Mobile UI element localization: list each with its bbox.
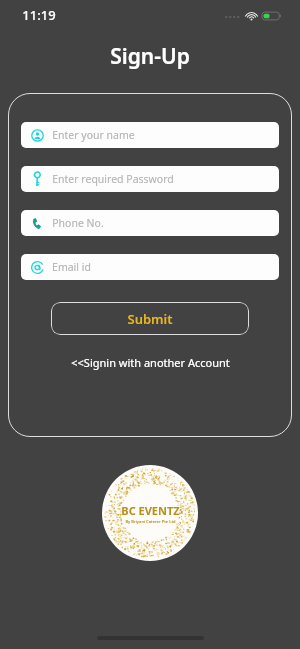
button[interactable]: Submit bbox=[51, 302, 249, 335]
staticText: Submit bbox=[127, 310, 173, 328]
button[interactable]: Email id bbox=[21, 254, 279, 280]
staticText: Enter your name bbox=[52, 128, 135, 142]
button[interactable]: <<Signin with another Account bbox=[21, 355, 279, 370]
button[interactable]: Enter your name bbox=[21, 122, 279, 148]
staticText: Sign-Up bbox=[110, 42, 190, 71]
staticText: Email id bbox=[52, 260, 91, 274]
button[interactable]: BC Eventz logo bbox=[102, 465, 198, 561]
staticText: BC EVENTZ bbox=[121, 503, 180, 518]
staticText: By Briyani Caterer Pte Ltd bbox=[125, 519, 176, 524]
staticText: <<Signin with another Account bbox=[71, 355, 230, 370]
button[interactable]: Enter required Password bbox=[21, 166, 279, 192]
staticText: Enter required Password bbox=[52, 172, 174, 186]
staticText: 11:19 bbox=[22, 6, 56, 24]
button[interactable]: Phone No. bbox=[21, 210, 279, 236]
staticText: Phone No. bbox=[52, 216, 104, 230]
